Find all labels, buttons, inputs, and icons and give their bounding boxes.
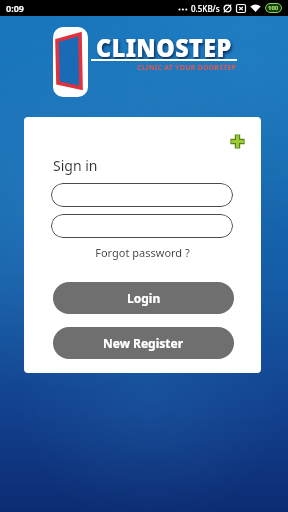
staticText: 100 xyxy=(268,4,279,12)
staticText: 0:09 xyxy=(6,2,24,14)
button[interactable]: New Register xyxy=(53,327,234,359)
staticText: Login xyxy=(127,290,161,306)
staticText: New Register xyxy=(103,335,184,351)
staticText: 0.5KB/s xyxy=(191,3,220,14)
button[interactable] xyxy=(230,134,245,149)
button[interactable] xyxy=(51,214,233,238)
staticText: CLINIC AT YOUR DOORSTEP xyxy=(137,63,237,73)
staticText: CLINOSTEP xyxy=(96,30,232,64)
button[interactable]: Forgot password ? xyxy=(24,245,261,260)
staticText: Sign in xyxy=(53,156,98,175)
button[interactable] xyxy=(51,183,233,207)
button[interactable]: Login xyxy=(53,282,234,314)
